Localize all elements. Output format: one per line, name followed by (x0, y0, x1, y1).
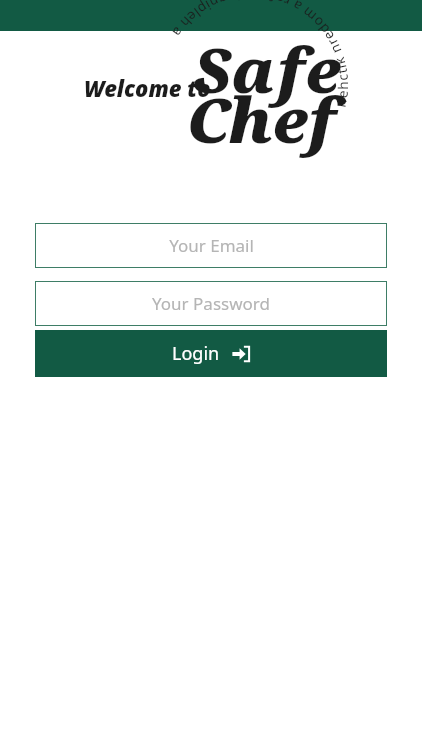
staticText: Your Email (169, 234, 254, 257)
button[interactable]: Login (35, 330, 387, 377)
button[interactable]: Your Password (35, 281, 387, 326)
button[interactable]: Your Email (35, 223, 387, 268)
other: Sign in (232, 345, 250, 363)
staticText: Your Password (152, 292, 270, 315)
staticText: Login (172, 341, 220, 366)
